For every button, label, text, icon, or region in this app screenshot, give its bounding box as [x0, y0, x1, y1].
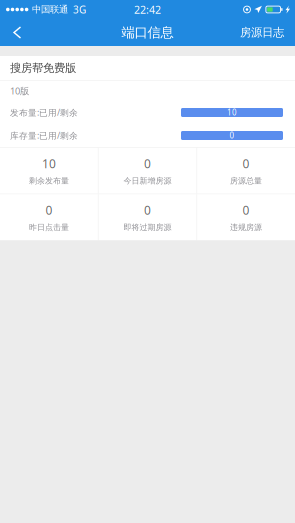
- staticText: 3G: [73, 3, 86, 16]
- staticText: 房源日志: [240, 25, 284, 40]
- staticText: 违规房源: [230, 222, 262, 232]
- staticText: 10版: [10, 84, 29, 97]
- staticText: 10: [227, 107, 237, 118]
- staticText: 0: [45, 202, 52, 218]
- staticText: 库存量:已用/剩余: [10, 130, 78, 141]
- button[interactable]: 返回: [0, 19, 36, 46]
- staticText: 发布量:已用/剩余: [10, 107, 78, 118]
- button[interactable]: 0: [98, 148, 196, 194]
- button[interactable]: 0: [197, 148, 295, 194]
- button[interactable]: 0: [98, 194, 196, 240]
- button[interactable]: 10: [0, 148, 98, 194]
- staticText: 今日新增房源: [123, 176, 171, 186]
- staticText: 端口信息: [121, 24, 173, 41]
- staticText: 中国联通: [32, 4, 68, 15]
- staticText: 剩余发布量: [29, 176, 69, 186]
- staticText: 0: [243, 155, 250, 172]
- staticText: 0: [144, 202, 151, 218]
- staticText: 昨日点击量: [29, 222, 69, 232]
- staticText: 搜房帮免费版: [10, 61, 76, 75]
- staticText: 0: [243, 202, 250, 218]
- staticText: 10: [42, 155, 56, 172]
- button[interactable]: 房源日志: [230, 19, 295, 46]
- staticText: 0: [229, 130, 234, 141]
- staticText: 即将过期房源: [123, 222, 171, 232]
- staticText: 0: [144, 155, 151, 172]
- button[interactable]: 0: [0, 194, 98, 240]
- staticText: 房源总量: [230, 176, 262, 186]
- button[interactable]: 0: [197, 194, 295, 240]
- staticText: 22:42: [134, 2, 161, 17]
